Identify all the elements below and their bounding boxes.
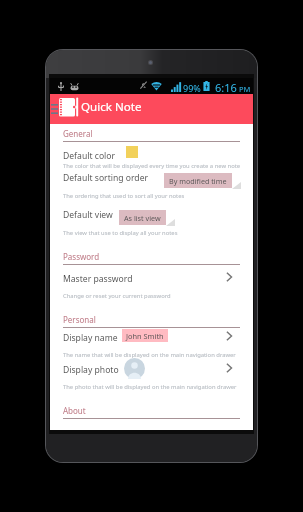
staticText: The color that will be displayed every t… — [63, 162, 241, 170]
button[interactable]: By modified time — [164, 173, 232, 188]
staticText: Display photo — [63, 364, 119, 376]
staticText: Change or reset your current password — [63, 292, 171, 300]
staticText: The name that will be displayed on the m… — [63, 351, 236, 359]
staticText: As list view — [124, 213, 161, 223]
staticText: Default view — [63, 209, 113, 221]
button[interactable]: Default view — [63, 204, 253, 241]
button[interactable]: Display photo — [63, 359, 253, 395]
staticText: Display name — [63, 332, 118, 344]
button[interactable]: Master password — [63, 268, 253, 304]
button[interactable]: Display name — [63, 327, 253, 363]
staticText: 6:16 — [215, 80, 237, 95]
staticText: Master password — [63, 273, 133, 285]
staticText: PM — [237, 84, 251, 94]
staticText: General — [63, 128, 93, 139]
button[interactable]: As list view — [119, 210, 166, 225]
staticText: The view that use to display all your no… — [63, 229, 178, 237]
staticText: About — [63, 405, 86, 416]
staticText: By modified time — [169, 176, 227, 186]
staticText: 99% — [183, 82, 201, 94]
button[interactable]: Default color — [63, 145, 253, 174]
button[interactable]: Default sorting order — [63, 167, 253, 204]
staticText: Default sorting order — [63, 172, 149, 184]
staticText: The photo that will be displayed on the … — [63, 383, 237, 391]
staticText: Password — [63, 251, 100, 262]
staticText: The ordering that used to sort all your … — [63, 192, 185, 200]
staticText: Default color — [63, 150, 116, 162]
staticText: Personal — [63, 314, 96, 325]
staticText: John Smith — [126, 331, 164, 341]
staticText: Quick Note — [81, 99, 142, 115]
button[interactable]: Open navigation drawer — [48, 100, 61, 118]
